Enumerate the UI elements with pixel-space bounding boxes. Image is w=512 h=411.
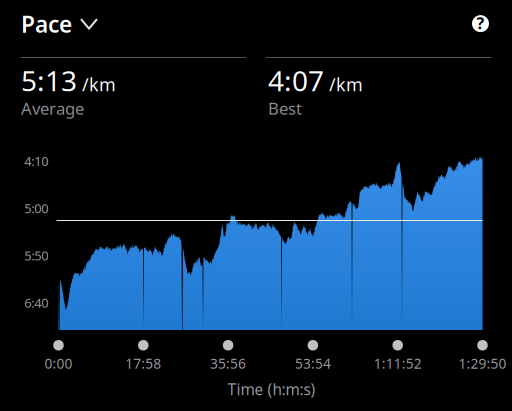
staticText: 17:58	[125, 354, 161, 373]
button[interactable]: Help	[463, 4, 498, 43]
staticText: /km	[329, 72, 363, 96]
staticText: Time (h:m:s)	[228, 379, 316, 400]
staticText: 4:07	[268, 61, 324, 99]
staticText: Average	[21, 97, 84, 120]
staticText: 1:11:52	[374, 354, 422, 373]
staticText: 5:50	[24, 247, 48, 264]
staticText: ?	[476, 12, 484, 34]
staticText: 0:00	[44, 354, 72, 373]
staticText: 1:29:50	[458, 354, 506, 373]
staticText: 35:56	[210, 354, 246, 373]
staticText: Best	[268, 97, 302, 120]
staticText: Pace	[21, 9, 72, 39]
staticText: 5:00	[24, 199, 48, 217]
staticText: /km	[82, 72, 116, 96]
button[interactable]: Pace	[15, 3, 104, 45]
staticText: 5:13	[21, 61, 77, 99]
staticText: 6:40	[24, 294, 48, 312]
staticText: 4:10	[24, 152, 48, 170]
staticText: 53:54	[295, 354, 331, 373]
